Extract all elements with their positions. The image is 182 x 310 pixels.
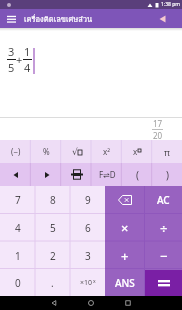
button[interactable] xyxy=(0,163,31,186)
staticText: x xyxy=(93,278,96,285)
staticText: + xyxy=(121,247,129,265)
staticText: 0 xyxy=(15,276,21,290)
staticText: 1:38 pm xyxy=(161,1,180,8)
button[interactable] xyxy=(105,186,145,214)
button[interactable] xyxy=(88,300,94,306)
button[interactable]: ( xyxy=(122,163,152,186)
button[interactable]: − xyxy=(145,242,182,270)
button[interactable]: 4 xyxy=(0,214,35,242)
button[interactable]: 8 xyxy=(35,186,70,214)
button[interactable]: 0 xyxy=(0,270,35,296)
button[interactable] xyxy=(145,270,182,296)
button[interactable]: √ xyxy=(62,140,92,163)
button[interactable]: เครื่องคิดเลขเศษส่วน xyxy=(0,9,182,28)
button[interactable]: 2 xyxy=(35,242,70,270)
staticText: √ xyxy=(72,147,78,157)
staticText: 3 xyxy=(8,44,15,59)
staticText: (−) xyxy=(11,146,21,157)
button[interactable]: 3 xyxy=(70,242,105,270)
button[interactable]: + xyxy=(105,242,145,270)
staticText: 2 xyxy=(50,249,56,263)
button[interactable]: 6 xyxy=(70,214,105,242)
button[interactable] xyxy=(62,163,92,186)
staticText: 9 xyxy=(85,193,91,207)
staticText: ( xyxy=(136,168,139,182)
button[interactable]: ANS xyxy=(105,270,145,296)
button[interactable]: . xyxy=(35,270,70,296)
staticText: × xyxy=(121,219,129,237)
staticText: เครื่องคิดเลขเศษส่วน xyxy=(24,13,93,25)
staticText: x² xyxy=(103,146,111,157)
staticText: 17 xyxy=(153,118,163,129)
staticText: x xyxy=(133,146,138,157)
staticText: ANS xyxy=(115,276,135,290)
staticText: 20 xyxy=(153,130,163,140)
staticText: 7 xyxy=(15,193,21,207)
button[interactable] xyxy=(125,300,131,306)
button[interactable]: 5 xyxy=(35,214,70,242)
button[interactable]: ÷ xyxy=(145,214,182,242)
button[interactable]: (−) xyxy=(0,140,31,163)
staticText: ÷ xyxy=(160,219,168,237)
staticText: F⇌D xyxy=(99,169,116,180)
button[interactable]: 7 xyxy=(0,186,35,214)
button[interactable] xyxy=(31,163,62,186)
staticText: ) xyxy=(166,168,169,182)
button[interactable]: x xyxy=(122,140,152,163)
button[interactable]: π xyxy=(152,140,182,163)
button[interactable]: × xyxy=(105,214,145,242)
button[interactable]: 1 xyxy=(0,242,35,270)
staticText: 1 xyxy=(15,249,21,263)
button[interactable] xyxy=(51,300,57,306)
staticText: ×10 xyxy=(80,278,93,288)
button[interactable]: x² xyxy=(92,140,122,163)
staticText: 4 xyxy=(15,221,21,235)
staticText: 5 xyxy=(8,60,15,75)
button[interactable] xyxy=(158,14,168,24)
staticText: 6 xyxy=(85,221,91,235)
button[interactable]: 9 xyxy=(70,186,105,214)
button[interactable]: AC xyxy=(145,186,182,214)
staticText: AC xyxy=(157,193,170,207)
staticText: % xyxy=(43,146,50,157)
staticText: 5 xyxy=(50,221,56,235)
button[interactable]: % xyxy=(31,140,62,163)
staticText: 4 xyxy=(24,60,31,75)
button[interactable]: ) xyxy=(152,163,182,186)
button[interactable] xyxy=(7,14,16,23)
button[interactable]: ×10 xyxy=(70,270,105,296)
staticText: π xyxy=(164,146,170,158)
staticText: 8 xyxy=(50,193,56,207)
staticText: 3 xyxy=(85,249,91,263)
staticText: + xyxy=(16,52,23,67)
button[interactable]: F⇌D xyxy=(92,163,122,186)
staticText: . xyxy=(51,276,54,290)
staticText: 1 xyxy=(24,44,31,59)
staticText: − xyxy=(160,247,168,265)
